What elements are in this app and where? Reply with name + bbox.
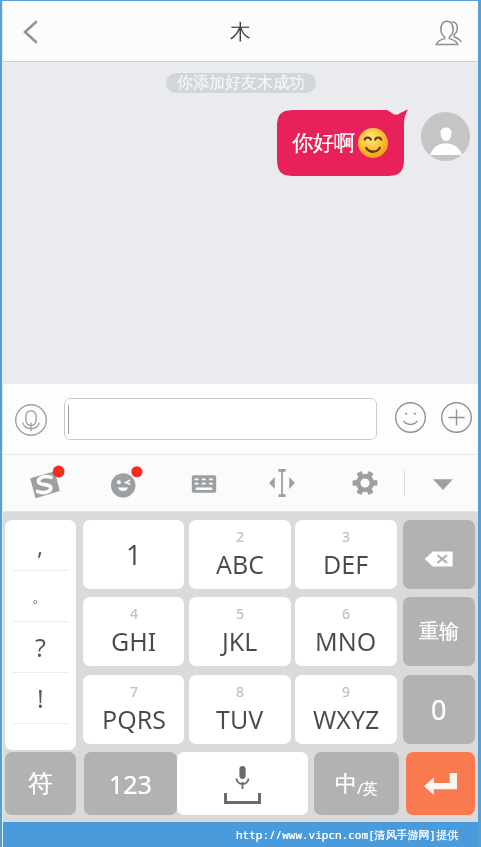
- button[interactable]: ?: [5, 622, 76, 672]
- staticText: 6: [342, 604, 351, 623]
- button[interactable]: Collapse keyboard: [427, 467, 459, 499]
- button[interactable]: Redo: [403, 597, 475, 666]
- button[interactable]: !: [5, 673, 76, 723]
- staticText: ABC: [216, 547, 265, 581]
- button[interactable]: Keyboard layout: [188, 468, 220, 498]
- button[interactable]: 3: [295, 520, 397, 589]
- button[interactable]: [64, 398, 377, 440]
- button[interactable]: Add: [438, 399, 474, 435]
- button[interactable]: Backspace: [403, 520, 475, 589]
- staticText: http://www.vipcn.com[清风手游网]提供: [236, 827, 459, 842]
- staticText: 符: [28, 768, 53, 799]
- staticText: 5: [236, 604, 245, 623]
- button[interactable]: Space: [177, 752, 308, 815]
- button[interactable]: 1: [83, 520, 184, 589]
- button[interactable]: Zero: [403, 675, 475, 744]
- button[interactable]: Voice input: [12, 401, 50, 439]
- button[interactable]: 4: [83, 597, 184, 666]
- button[interactable]: 中: [314, 752, 399, 815]
- button[interactable]: Settings: [352, 470, 378, 496]
- staticText: ?: [35, 630, 46, 664]
- staticText: MNO: [315, 624, 377, 658]
- button[interactable]: 。: [5, 571, 76, 621]
- button[interactable]: 8: [189, 675, 291, 744]
- staticText: 3: [342, 527, 351, 546]
- button[interactable]: ,: [5, 520, 76, 570]
- staticText: 7: [130, 682, 139, 701]
- button[interactable]: 符: [5, 752, 76, 815]
- staticText: 中: [335, 770, 357, 798]
- button[interactable]: Back: [3, 1, 58, 62]
- button[interactable]: 2: [189, 520, 291, 589]
- staticText: 4: [130, 604, 139, 623]
- button[interactable]: Sogou input method: [26, 466, 64, 504]
- staticText: 0: [431, 691, 447, 728]
- staticText: 你添加好友木成功: [177, 73, 305, 93]
- staticText: 9: [342, 682, 351, 701]
- staticText: 重输: [419, 619, 459, 644]
- staticText: 1: [126, 536, 142, 573]
- button[interactable]: Emoji: [107, 466, 143, 502]
- staticText: ,: [37, 530, 44, 561]
- staticText: 你好啊: [292, 130, 355, 156]
- staticText: 123: [109, 767, 152, 801]
- staticText: GHI: [111, 624, 157, 658]
- button[interactable]: 9: [295, 675, 397, 744]
- staticText: 2: [236, 527, 245, 546]
- button[interactable]: 6: [295, 597, 397, 666]
- staticText: PQRS: [102, 702, 166, 736]
- staticText: DEF: [323, 547, 369, 581]
- staticText: WXYZ: [313, 702, 380, 736]
- staticText: /英: [357, 778, 378, 798]
- staticText: !: [37, 681, 44, 715]
- button[interactable]: 你好啊: [277, 110, 408, 176]
- button[interactable]: Emoji: [392, 399, 428, 435]
- button[interactable]: 5: [189, 597, 291, 666]
- staticText: 。: [32, 586, 49, 607]
- button[interactable]: Move cursor: [267, 469, 297, 497]
- button[interactable]: 7: [83, 675, 184, 744]
- button[interactable]: Contacts: [416, 1, 478, 62]
- staticText: JKL: [222, 624, 258, 658]
- staticText: 木: [230, 19, 251, 45]
- staticText: 8: [236, 682, 245, 701]
- button[interactable]: 123: [84, 752, 177, 815]
- button[interactable]: Enter: [406, 752, 475, 815]
- staticText: TUV: [216, 702, 264, 736]
